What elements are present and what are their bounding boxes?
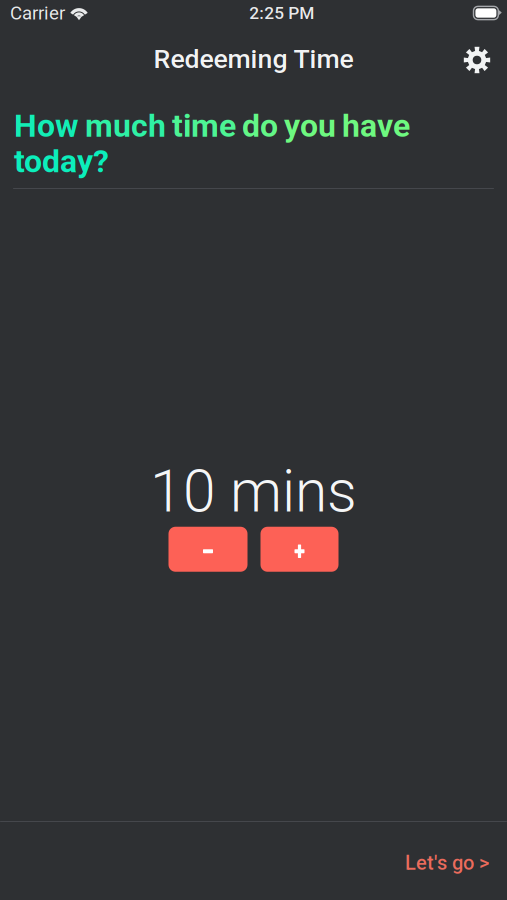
staticText: 10 mins	[150, 457, 357, 526]
staticText: much	[85, 107, 166, 144]
staticText: you	[284, 107, 336, 144]
button[interactable]: Let's go >	[384, 835, 507, 887]
staticText: do	[242, 107, 278, 144]
staticText: have	[342, 107, 410, 144]
staticText: 2:25 PM	[249, 3, 314, 23]
staticText: Let's go >	[405, 851, 489, 875]
staticText: Carrier	[10, 2, 65, 24]
button[interactable]: Settings	[449, 29, 507, 78]
button[interactable]: Increase minutes	[260, 527, 338, 572]
staticText: How	[14, 107, 79, 144]
staticText: today?	[14, 142, 109, 180]
staticText: time	[172, 107, 236, 144]
staticText: Redeeming Time	[153, 43, 353, 75]
button[interactable]: Decrease minutes	[168, 527, 247, 572]
